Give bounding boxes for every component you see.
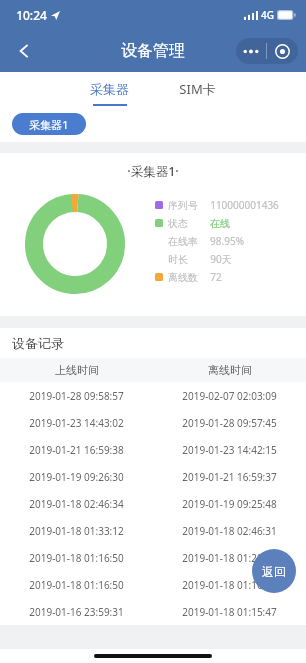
staticText: 2019-01-19 09:25:48: [182, 497, 277, 511]
button[interactable]: 2019-01-19 09:26:30: [0, 463, 306, 490]
staticText: 98.95%: [210, 234, 244, 248]
button[interactable]: Back: [6, 33, 42, 69]
staticText: 2019-01-18 02:46:34: [29, 497, 124, 511]
button[interactable]: More: [236, 38, 266, 64]
button[interactable]: 返回: [252, 549, 296, 593]
staticText: 离线时间: [208, 363, 252, 377]
staticText: 2019-01-16 23:59:31: [29, 605, 124, 619]
staticText: 在线: [210, 217, 230, 230]
button[interactable]: SIM卡: [171, 72, 224, 106]
staticText: 2019-01-18 01:15:47: [182, 605, 277, 619]
staticText: 72: [210, 270, 222, 284]
staticText: 2019-01-23 14:42:15: [182, 443, 277, 457]
staticText: 上线时间: [55, 363, 99, 377]
staticText: 4G: [261, 8, 274, 22]
button[interactable]: 2019-01-21 16:59:38: [0, 436, 306, 463]
staticText: 110000001436: [210, 198, 279, 212]
button[interactable]: 2019-01-28 09:58:57: [0, 382, 306, 409]
staticText: 采集器1: [29, 117, 69, 132]
button[interactable]: 2019-01-18 01:16:50: [0, 544, 306, 571]
staticText: SIM卡: [179, 80, 216, 98]
staticText: 2019-01-18 01:33:12: [29, 524, 124, 538]
staticText: 2019-01-23 14:43:02: [29, 416, 124, 430]
button[interactable]: 采集器1: [12, 113, 86, 135]
staticText: 2019-01-18 02:46:31: [182, 524, 277, 538]
button[interactable]: 2019-01-18 01:33:12: [0, 517, 306, 544]
staticText: 2019-01-28 09:57:45: [182, 416, 277, 430]
staticText: 离线数: [168, 271, 198, 284]
staticText: 序列号: [168, 199, 198, 212]
button[interactable]: 2019-01-18 01:16:50: [0, 571, 306, 598]
staticText: 时长: [168, 253, 188, 266]
staticText: 2019-01-18 01:16:52: [182, 578, 277, 592]
staticText: 2019-02-07 02:03:09: [182, 389, 277, 403]
staticText: 2019-01-28 09:58:57: [29, 389, 124, 403]
staticText: 采集器: [90, 81, 129, 97]
staticText: 10:24: [16, 7, 47, 23]
staticText: 设备管理: [121, 41, 185, 61]
button[interactable]: 2019-01-18 02:46:34: [0, 490, 306, 517]
staticText: 2019-01-19 09:26:30: [29, 470, 124, 484]
staticText: 返回: [262, 564, 286, 579]
staticText: 90天: [210, 252, 232, 266]
staticText: 2019-01-18 01:16:50: [29, 551, 124, 565]
staticText: ·采集器1·: [127, 163, 179, 180]
button[interactable]: 采集器: [82, 72, 137, 106]
staticText: 设备记录: [12, 335, 64, 351]
staticText: 状态: [168, 217, 188, 230]
staticText: 2019-01-18 01:28:22: [182, 551, 277, 565]
button[interactable]: 2019-01-16 23:59:31: [0, 598, 306, 625]
staticText: 2019-01-21 16:59:38: [29, 443, 124, 457]
staticText: 在线率: [168, 235, 198, 248]
button[interactable]: Close: [267, 38, 298, 64]
staticText: 2019-01-21 16:59:37: [182, 470, 277, 484]
staticText: 2019-01-18 01:16:50: [29, 578, 124, 592]
button[interactable]: 2019-01-23 14:43:02: [0, 409, 306, 436]
